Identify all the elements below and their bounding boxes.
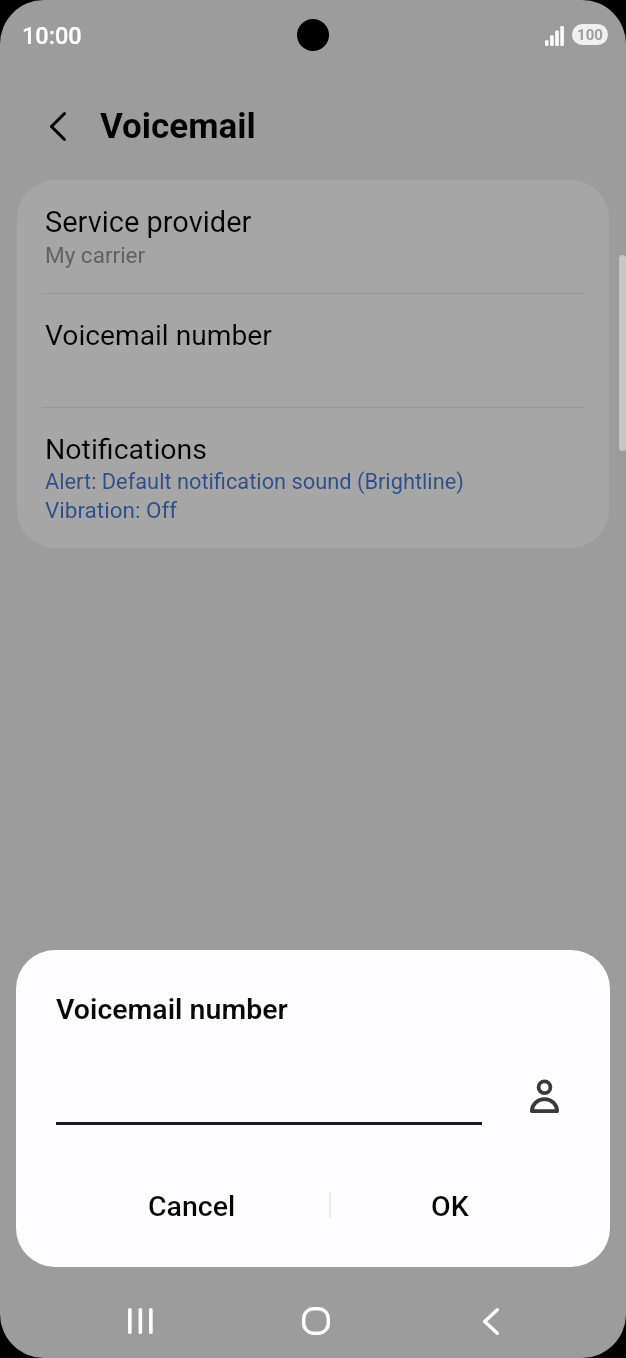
staticText: Voicemail number — [56, 993, 288, 1026]
button[interactable]: Select contact — [514, 1066, 574, 1126]
staticText: Cancel — [148, 1190, 236, 1223]
button[interactable]: Notifications — [17, 408, 609, 548]
staticText: My carrier — [45, 242, 146, 268]
staticText: 100 — [577, 26, 603, 44]
button[interactable]: Voicemail number — [17, 294, 609, 407]
button[interactable]: Recent apps — [104, 1285, 176, 1357]
button[interactable]: OK — [360, 1172, 540, 1240]
staticText: OK — [431, 1190, 469, 1223]
staticText: Service provider — [45, 205, 252, 239]
button[interactable]: Home — [280, 1285, 352, 1357]
staticText: Vibration: Off — [45, 497, 178, 523]
staticText: Alert: Default notification sound (Brigh… — [45, 469, 464, 495]
staticText: Voicemail number — [45, 319, 272, 352]
button[interactable]: Back — [455, 1285, 527, 1357]
button[interactable]: Service provider — [17, 180, 609, 293]
staticText: 10:00 — [22, 22, 82, 50]
button[interactable]: Navigate up — [30, 98, 86, 154]
staticText: Notifications — [45, 433, 208, 466]
button[interactable]: Cancel — [102, 1172, 282, 1240]
staticText: Voicemail — [100, 106, 256, 147]
